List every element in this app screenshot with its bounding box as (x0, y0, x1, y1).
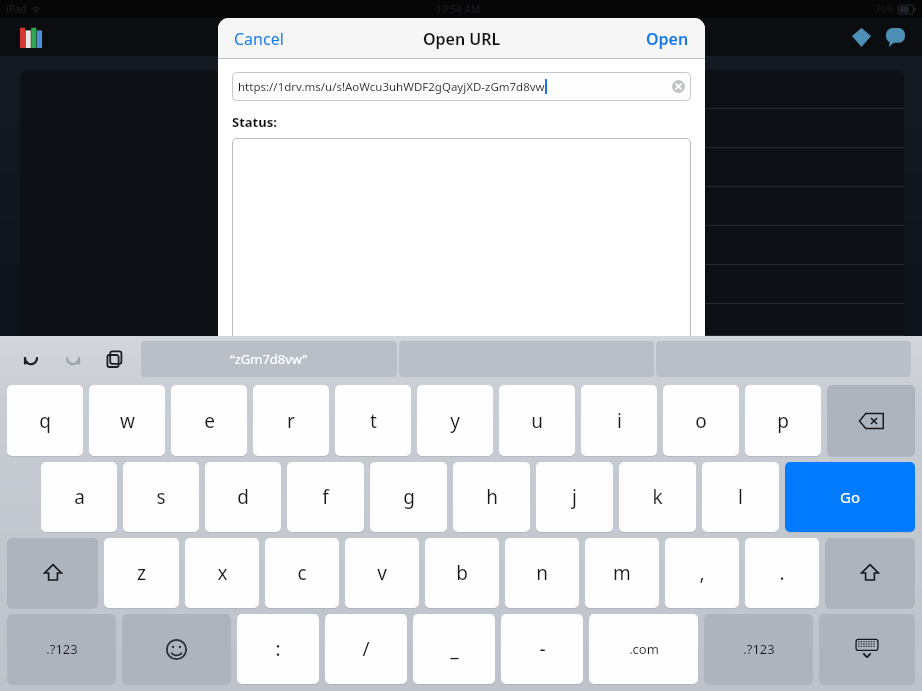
button[interactable]: https://1drv.ms/u/s!AoWcu3uhWDF2gQayjXD-… (232, 72, 691, 101)
staticText: - (539, 636, 546, 662)
button[interactable]: hide (819, 614, 915, 684)
button[interactable]: l (702, 462, 779, 532)
button[interactable]: v (345, 538, 419, 608)
staticText: iPad (6, 2, 27, 16)
staticText: s (156, 484, 166, 510)
staticText: “zGm7d8vw” (230, 350, 308, 368)
button[interactable]: : (237, 614, 319, 684)
staticText: l (738, 484, 743, 510)
button[interactable]: z (104, 538, 179, 608)
staticText: o (695, 408, 707, 434)
staticText: u (531, 408, 543, 434)
button[interactable]: b (425, 538, 499, 608)
button[interactable]: . (745, 538, 819, 608)
button[interactable]: s (123, 462, 199, 532)
button[interactable]: Redo (52, 342, 94, 376)
staticText: j (572, 484, 577, 510)
staticText: Go (840, 487, 860, 507)
staticText: Open URL (423, 28, 501, 50)
staticText: f (322, 484, 329, 510)
button[interactable]: .com (589, 614, 698, 684)
staticText: _ (450, 636, 459, 662)
staticText: .com (629, 640, 659, 658)
button[interactable]: “zGm7d8vw” (141, 341, 397, 377)
staticText: p (777, 408, 789, 434)
staticText: w (120, 408, 135, 434)
staticText: g (403, 484, 415, 510)
staticText: , (699, 560, 705, 586)
staticText: z (137, 560, 146, 586)
button[interactable]: Notes (880, 22, 910, 52)
staticText: y (450, 408, 460, 434)
staticText: b (456, 560, 468, 586)
staticText: k (652, 484, 663, 510)
staticText: .?123 (743, 640, 775, 658)
staticText: x (217, 560, 228, 586)
button[interactable]: o (663, 385, 739, 456)
button[interactable]: p (745, 385, 821, 456)
staticText: d (237, 484, 249, 510)
button[interactable]: / (325, 614, 407, 684)
button[interactable]: Library (18, 24, 44, 50)
staticText: https://1drv.ms/u/s!AoWcu3uhWDF2gQayjXD-… (238, 79, 545, 95)
staticText: h (486, 484, 498, 510)
button[interactable]: shift (7, 538, 98, 608)
button[interactable]: e (171, 385, 247, 456)
button[interactable]: .?123 (7, 614, 116, 684)
button[interactable]: Undo (10, 342, 52, 376)
button[interactable]: backspace (827, 385, 915, 456)
staticText: Status: (232, 113, 277, 131)
staticText: t (370, 408, 377, 434)
button[interactable]: w (89, 385, 165, 456)
button[interactable]: d (205, 462, 281, 532)
button[interactable]: g (370, 462, 447, 532)
staticText: . (779, 560, 785, 586)
button[interactable]: Paste (94, 342, 136, 376)
button[interactable]: Go (785, 462, 915, 532)
staticText: 76% (875, 2, 895, 16)
staticText: : (275, 636, 281, 662)
staticText: / (362, 636, 370, 662)
button[interactable]: .?123 (704, 614, 813, 684)
staticText: 10:54 AM (436, 2, 480, 16)
button[interactable]: Bookmark (846, 22, 876, 52)
staticText: v (377, 560, 387, 586)
staticText: m (613, 560, 631, 586)
button[interactable]: q (7, 385, 83, 456)
button[interactable]: c (265, 538, 339, 608)
button[interactable]: u (499, 385, 575, 456)
button[interactable]: j (536, 462, 613, 532)
button[interactable]: i (581, 385, 657, 456)
staticText: i (617, 408, 622, 434)
button[interactable]: - (501, 614, 583, 684)
staticText: c (297, 560, 307, 586)
button[interactable]: Clear text (672, 80, 685, 93)
staticText: e (204, 408, 215, 434)
button[interactable]: _ (413, 614, 495, 684)
button[interactable]: r (253, 385, 329, 456)
staticText: r (287, 408, 295, 434)
button[interactable]: x (185, 538, 259, 608)
button[interactable]: Cancel (234, 28, 284, 50)
button[interactable]: h (453, 462, 530, 532)
button[interactable]: y (417, 385, 493, 456)
staticText: .?123 (46, 640, 78, 658)
button[interactable]: f (287, 462, 364, 532)
button[interactable]: m (585, 538, 659, 608)
button[interactable]: a (41, 462, 117, 532)
button[interactable]: n (505, 538, 579, 608)
staticText: Open (646, 28, 689, 50)
button[interactable]: t (335, 385, 411, 456)
button[interactable]: shift (825, 538, 915, 608)
button[interactable]: emoji (122, 614, 231, 684)
staticText: Cancel (234, 28, 284, 50)
button[interactable]: k (619, 462, 696, 532)
staticText: q (39, 408, 51, 434)
staticText: a (74, 484, 85, 510)
button[interactable]: , (665, 538, 739, 608)
button[interactable]: Open (646, 28, 689, 50)
staticText: n (536, 560, 548, 586)
